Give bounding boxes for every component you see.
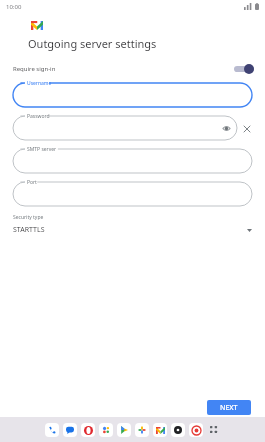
button[interactable]: Opera <box>81 423 95 437</box>
staticText: SMTP server <box>27 146 57 153</box>
button[interactable]: Play Store <box>117 423 131 437</box>
button[interactable]: Password <box>13 116 237 140</box>
button[interactable]: SMTP server <box>13 149 252 173</box>
staticText: Username <box>27 80 52 87</box>
staticText: Require sign-in <box>13 65 56 73</box>
button[interactable]: Settings <box>171 423 185 437</box>
button[interactable]: NEXT <box>207 400 251 415</box>
staticText: Security type <box>13 214 44 221</box>
staticText: NEXT <box>220 403 238 413</box>
button[interactable]: Contacts <box>99 423 113 437</box>
button[interactable]: Gmail <box>153 423 167 437</box>
staticText: STARTTLS <box>13 225 45 235</box>
staticText: Password <box>27 113 50 120</box>
button[interactable]: Messages <box>63 423 77 437</box>
button[interactable]: All apps <box>207 423 221 437</box>
staticText: Outgoing server settings <box>28 36 157 51</box>
button[interactable]: Phone <box>45 423 59 437</box>
staticText: Port <box>27 179 37 186</box>
button[interactable]: Username <box>13 83 252 107</box>
button[interactable]: Require sign-in <box>0 61 265 77</box>
button[interactable]: Port <box>13 182 252 206</box>
button[interactable]: Security type <box>0 214 265 235</box>
staticText: 10:00 <box>6 3 22 11</box>
button[interactable]: Clear <box>241 123 252 134</box>
button[interactable]: Photos <box>135 423 149 437</box>
button[interactable]: Show password <box>222 124 231 133</box>
button[interactable]: Record <box>189 423 203 437</box>
